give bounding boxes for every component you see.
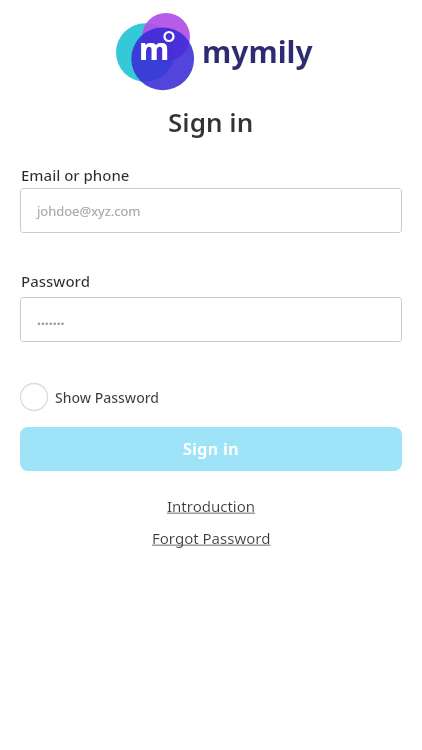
button[interactable]: Show Password <box>18 381 160 413</box>
staticText: mymily <box>202 31 313 72</box>
staticText: ....... <box>37 310 65 329</box>
button[interactable]: Introduction <box>167 496 256 516</box>
staticText: Email or phone <box>21 165 130 185</box>
button[interactable]: ....... <box>20 297 402 342</box>
staticText: Sign in <box>168 104 254 139</box>
button[interactable]: johdoe@xyz.com <box>20 188 402 233</box>
staticText: m <box>139 27 170 69</box>
staticText: Show Password <box>55 388 160 407</box>
staticText: Forgot Password <box>152 528 271 548</box>
staticText: Introduction <box>167 496 256 516</box>
staticText: johdoe@xyz.com <box>37 202 141 220</box>
button[interactable]: Forgot Password <box>152 528 271 548</box>
staticText: Sign in <box>183 438 239 460</box>
staticText: Password <box>21 271 90 291</box>
button[interactable]: Sign in <box>20 427 402 471</box>
